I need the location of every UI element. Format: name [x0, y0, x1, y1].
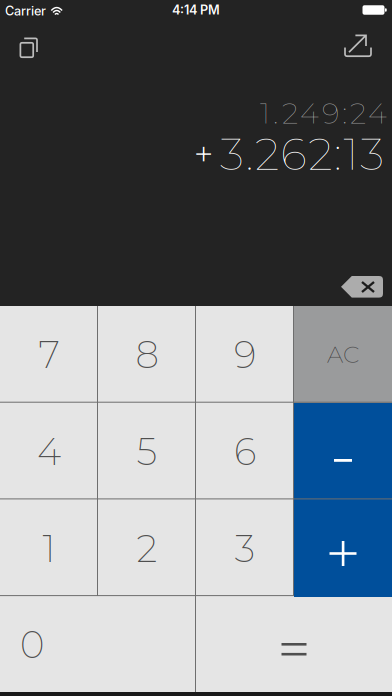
- button[interactable]: 9: [196, 306, 294, 403]
- staticText: 6: [234, 429, 256, 474]
- button[interactable]: Delete: [341, 276, 383, 298]
- staticText: 7: [38, 332, 59, 377]
- button[interactable]: Equals: [196, 597, 392, 692]
- staticText: 3: [234, 526, 255, 571]
- button[interactable]: 5: [98, 403, 196, 500]
- button[interactable]: 1: [0, 500, 98, 597]
- staticText: 4: [37, 429, 61, 474]
- button[interactable]: 6: [196, 403, 294, 500]
- button[interactable]: 3: [196, 500, 294, 597]
- button[interactable]: Plus: [294, 500, 392, 597]
- staticText: 1: [42, 526, 55, 571]
- button[interactable]: AC: [294, 306, 392, 403]
- button[interactable]: 0: [0, 597, 196, 692]
- button[interactable]: Share: [337, 27, 379, 64]
- staticText: Carrier: [5, 3, 46, 19]
- staticText: 4:14 PM: [172, 2, 220, 18]
- staticText: +: [194, 133, 214, 175]
- staticText: 8: [135, 332, 158, 377]
- button[interactable]: Duplicate: [13, 26, 45, 65]
- button[interactable]: 7: [0, 306, 98, 403]
- staticText: 9: [234, 332, 256, 377]
- staticText: 1.249:24: [260, 95, 387, 131]
- staticText: 3.262:13: [220, 127, 384, 181]
- button[interactable]: 8: [98, 306, 196, 403]
- button[interactable]: Minus: [294, 403, 392, 500]
- button[interactable]: 2: [98, 500, 196, 597]
- staticText: 2: [136, 526, 157, 571]
- staticText: 5: [136, 429, 157, 474]
- staticText: 0: [20, 622, 44, 667]
- button[interactable]: 4: [0, 403, 98, 500]
- staticText: AC: [327, 340, 359, 369]
